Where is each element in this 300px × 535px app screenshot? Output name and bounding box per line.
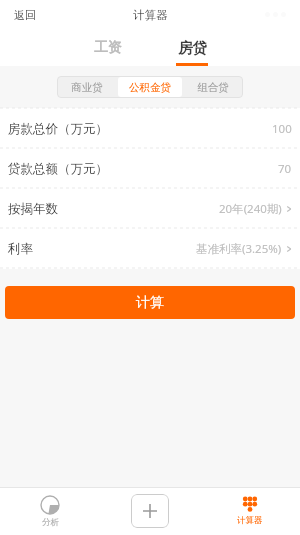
staticText: 计算器 [133,8,168,22]
button[interactable]: 按揭年数 [0,189,300,228]
button[interactable]: 商业贷 [58,77,116,97]
staticText: 分析 [42,517,59,528]
staticText: 20年(240期) [219,201,282,217]
staticText: 利率 [8,241,33,257]
button[interactable]: 公积金贷 [118,77,182,97]
button[interactable]: 返回 [0,4,46,26]
staticText: 计算 [136,294,164,312]
button[interactable]: 房款总价（万元） [0,109,300,148]
staticText: 组合贷 [197,81,229,94]
staticText: 贷款总额（万元） [8,161,108,177]
staticText: 计算器 [237,515,263,526]
staticText: 基准利率(3.25%) [196,241,282,257]
staticText: 商业贷 [71,81,103,94]
button[interactable]: Add [100,487,200,535]
staticText: 公积金贷 [129,81,171,94]
button[interactable]: 分析 [0,487,100,535]
staticText: 房款总价（万元） [8,121,108,137]
button[interactable]: 利率 [0,229,300,268]
button[interactable]: 计算器 [200,487,300,535]
staticText: 100 [272,121,292,137]
button[interactable]: 组合贷 [184,77,242,97]
button[interactable]: 房贷 [150,29,234,66]
button[interactable]: 贷款总额（万元） [0,149,300,188]
button[interactable]: 工资 [66,29,150,66]
staticText: 房贷 [178,39,207,57]
staticText: 70 [278,161,292,177]
staticText: 工资 [94,39,122,57]
staticText: 返回 [14,8,36,22]
button[interactable]: 计算 [5,286,295,319]
staticText: 按揭年数 [8,201,58,217]
